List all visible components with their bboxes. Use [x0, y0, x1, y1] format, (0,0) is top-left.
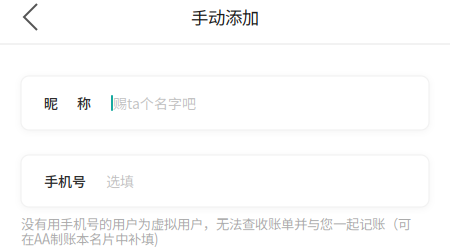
staticText: 称 — [77, 93, 91, 113]
staticText: 手机号 — [44, 171, 86, 191]
button[interactable]: 昵 — [21, 76, 429, 130]
staticText: 没有用手机号的用户为虚拟用户，无法查收账单并与您一起记账（可 — [21, 214, 411, 233]
staticText: 昵 — [44, 93, 58, 113]
button[interactable]: 手机号 — [21, 155, 429, 207]
staticText: 赐ta个名字吧 — [113, 93, 196, 113]
staticText: 在AA制账本名片中补填) — [21, 229, 159, 248]
staticText: 手动添加 — [191, 4, 259, 30]
button[interactable]: 返回 — [0, 0, 61, 34]
staticText: 选填 — [106, 171, 134, 191]
